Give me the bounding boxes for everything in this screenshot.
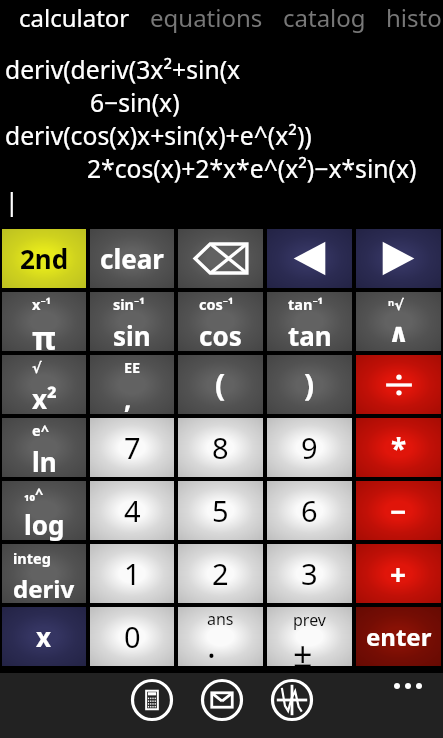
button[interactable]: √ xyxy=(2,355,86,414)
button[interactable]: * xyxy=(356,418,441,477)
staticText: clear xyxy=(100,241,164,276)
staticText: ln xyxy=(32,444,57,479)
button[interactable]: sin⁻¹ xyxy=(90,292,174,351)
button[interactable]: calculator xyxy=(19,1,130,34)
button[interactable]: x xyxy=(2,607,86,666)
button[interactable]: More options xyxy=(394,683,422,689)
button[interactable]: 6 xyxy=(267,481,352,540)
staticText: 9 xyxy=(301,428,318,467)
staticText: x xyxy=(36,619,52,654)
staticText: sin xyxy=(113,318,151,353)
button[interactable]: Send xyxy=(198,676,246,724)
button[interactable]: prev xyxy=(267,607,352,666)
staticText: deriv(deriv(3x²+sin(x xyxy=(5,53,241,87)
button[interactable]: 5 xyxy=(178,481,263,540)
button[interactable]: 4 xyxy=(90,481,174,540)
staticText: , xyxy=(124,381,132,416)
button[interactable]: 1 xyxy=(90,544,174,603)
button[interactable]: equations xyxy=(150,1,263,34)
staticText: log xyxy=(24,507,65,542)
staticText: 4 xyxy=(124,491,141,530)
staticText: prev xyxy=(293,609,326,631)
staticText: π xyxy=(32,316,56,352)
staticText: 2 xyxy=(212,554,229,593)
button[interactable]: EE xyxy=(90,355,174,414)
button[interactable]: ₁₀^ xyxy=(2,481,86,540)
staticText: . xyxy=(207,623,216,658)
button[interactable]: Graph xyxy=(268,676,316,724)
staticText: ans xyxy=(207,608,234,630)
button[interactable]: − xyxy=(356,481,441,540)
staticText: √ xyxy=(32,360,42,377)
staticText: integ xyxy=(13,548,51,568)
button[interactable]: Backspace xyxy=(178,229,263,288)
staticText: e^ xyxy=(32,420,49,440)
staticText: catalog xyxy=(283,1,366,34)
staticText: x² xyxy=(32,381,57,416)
button[interactable]: ans xyxy=(178,607,263,666)
staticText: 6−sin(x) xyxy=(90,86,180,120)
button[interactable]: ( xyxy=(178,355,263,414)
staticText: ₁₀^ xyxy=(24,483,44,503)
button[interactable]: 8 xyxy=(178,418,263,477)
button[interactable]: Move cursor right xyxy=(356,229,441,288)
staticText: history xyxy=(386,1,443,34)
staticText: ) xyxy=(304,364,315,405)
staticText: 7 xyxy=(124,428,141,467)
button[interactable]: 7 xyxy=(90,418,174,477)
button[interactable]: x⁻¹ xyxy=(2,292,86,351)
staticText: sin⁻¹ xyxy=(113,294,145,314)
staticText: 8 xyxy=(212,428,229,467)
staticText: equations xyxy=(150,1,263,34)
button[interactable]: history xyxy=(386,1,443,34)
staticText: ( xyxy=(215,364,226,405)
button[interactable]: cos⁻¹ xyxy=(178,292,263,351)
staticText: + xyxy=(390,555,407,593)
staticText: cos xyxy=(199,318,242,353)
button[interactable]: clear xyxy=(90,229,174,288)
button[interactable]: tan⁻¹ xyxy=(267,292,352,351)
staticText: enter xyxy=(366,620,432,653)
button[interactable]: enter xyxy=(356,607,441,666)
button[interactable]: ) xyxy=(267,355,352,414)
button[interactable]: catalog xyxy=(283,1,366,34)
staticText: deriv xyxy=(13,572,75,605)
staticText: x⁻¹ xyxy=(32,294,52,314)
button[interactable]: 2nd xyxy=(2,229,86,288)
button[interactable]: e^ xyxy=(2,418,86,477)
button[interactable]: Divide xyxy=(356,355,441,414)
staticText: ⁿ√ xyxy=(388,294,404,314)
staticText: ∧ xyxy=(388,318,410,348)
staticText: ± xyxy=(293,631,313,668)
button[interactable]: ⁿ√ xyxy=(356,292,441,351)
staticText: EE xyxy=(124,357,141,377)
button[interactable]: 9 xyxy=(267,418,352,477)
staticText: * xyxy=(391,429,407,467)
staticText: tan⁻¹ xyxy=(288,294,324,314)
staticText: 5 xyxy=(212,491,229,530)
staticText: deriv(cos(x)x+sin(x)+e^(x²)) xyxy=(5,119,312,153)
staticText: | xyxy=(5,185,19,219)
button[interactable]: Move cursor left xyxy=(267,229,352,288)
staticText: 2nd xyxy=(20,241,69,276)
staticText: 3 xyxy=(301,554,318,593)
button[interactable]: + xyxy=(356,544,441,603)
button[interactable]: Calculator xyxy=(128,676,176,724)
button[interactable]: 0 xyxy=(90,607,174,666)
staticText: 2*cos(x)+2*x*e^(x²)−x*sin(x) xyxy=(87,152,417,186)
staticText: − xyxy=(390,492,407,530)
button[interactable]: 3 xyxy=(267,544,352,603)
staticText: calculator xyxy=(19,1,130,34)
staticText: tan xyxy=(288,318,332,353)
staticText: 6 xyxy=(301,491,318,530)
button[interactable]: integ xyxy=(2,544,86,603)
button[interactable]: 2 xyxy=(178,544,263,603)
staticText: 1 xyxy=(124,554,141,593)
staticText: 0 xyxy=(124,617,141,656)
staticText: cos⁻¹ xyxy=(199,294,234,314)
